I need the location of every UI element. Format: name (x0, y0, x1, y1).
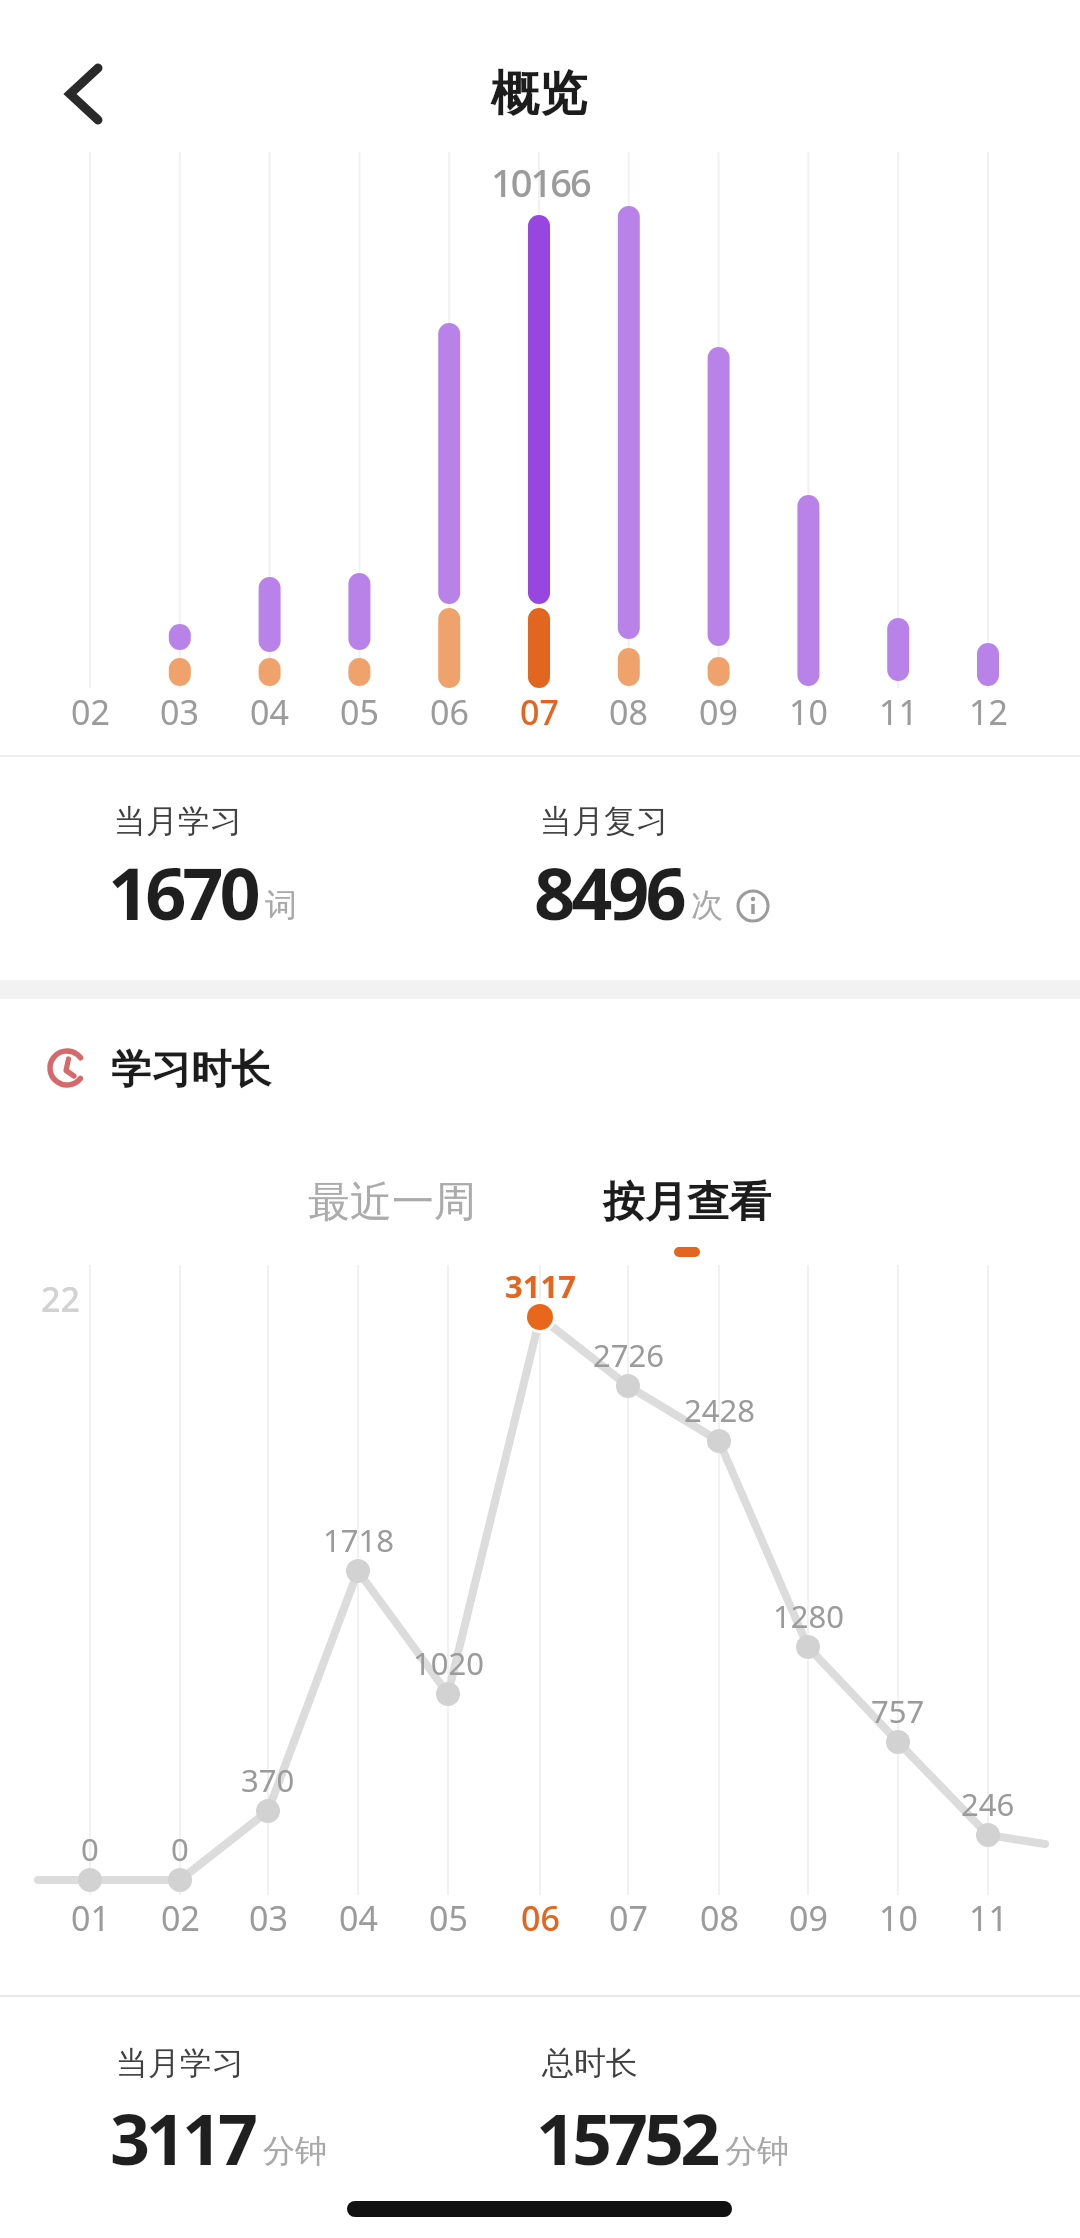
staticText: 03 (160, 689, 199, 735)
staticText: 11 (969, 1895, 1008, 1941)
staticText: 2726 (593, 1334, 664, 1376)
staticText: 2428 (684, 1389, 755, 1431)
button[interactable] (48, 58, 120, 130)
staticText: 当月复习 (540, 801, 668, 841)
staticText: 分钟 (263, 2131, 327, 2171)
staticText: 1280 (773, 1595, 844, 1637)
staticText: 1718 (323, 1519, 394, 1561)
staticText: 07 (609, 1895, 648, 1941)
button[interactable]: 按月查看 (587, 1170, 787, 1234)
staticText: 08 (700, 1895, 739, 1941)
staticText: 01 (71, 1895, 110, 1941)
staticText: 词 (265, 885, 297, 925)
staticText: 3117 (110, 2090, 255, 2185)
staticText: 8496 (534, 843, 683, 941)
staticText: 总时长 (542, 2043, 638, 2083)
staticText: 02 (161, 1895, 200, 1941)
staticText: 3117 (505, 1265, 576, 1307)
staticText: 按月查看 (603, 1176, 771, 1229)
staticText: 03 (249, 1895, 288, 1941)
staticText: 370 (241, 1759, 295, 1801)
staticText: 06 (521, 1895, 560, 1941)
staticText: 10 (789, 689, 828, 735)
staticText: 学习时长 (111, 1044, 271, 1094)
staticText: 04 (339, 1895, 378, 1941)
staticText: 05 (340, 689, 379, 735)
staticText: 当月学习 (114, 801, 242, 841)
staticText: 10166 (491, 156, 590, 208)
staticText: 757 (871, 1690, 925, 1732)
staticText: 12 (969, 689, 1008, 735)
staticText: 1020 (413, 1642, 484, 1684)
staticText: 0 (171, 1828, 189, 1870)
staticText: 次 (691, 885, 723, 925)
staticText: 最近一周 (308, 1176, 476, 1229)
staticText: 246 (961, 1783, 1015, 1825)
staticText: 22 (41, 1276, 80, 1322)
staticText: 0 (81, 1828, 99, 1870)
staticText: 1670 (108, 843, 257, 941)
button[interactable]: 8496 (534, 843, 770, 941)
button[interactable]: 最近一周 (292, 1170, 492, 1234)
staticText: 04 (250, 689, 289, 735)
staticText: 07 (520, 689, 559, 735)
staticText: 10 (879, 1895, 918, 1941)
staticText: 概览 (491, 64, 587, 124)
staticText: 06 (430, 689, 469, 735)
staticText: 15752 (536, 2090, 717, 2185)
staticText: 05 (429, 1895, 468, 1941)
staticText: 09 (789, 1895, 828, 1941)
staticText: 02 (71, 689, 110, 735)
staticText: 08 (609, 689, 648, 735)
staticText: 分钟 (725, 2131, 789, 2171)
staticText: 11 (879, 689, 918, 735)
staticText: 09 (699, 689, 738, 735)
staticText: 当月学习 (116, 2043, 244, 2083)
